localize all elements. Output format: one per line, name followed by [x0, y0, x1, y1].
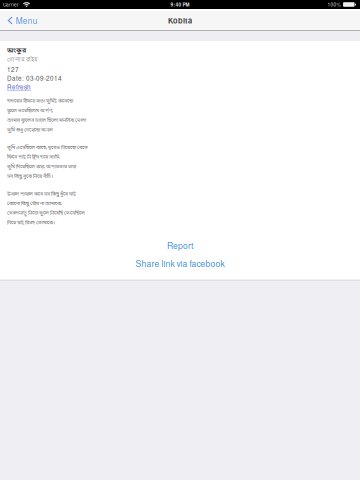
staticText: তুমি শুধু দেখেছো অনল [7, 127, 53, 134]
staticText: উথাল পাথাল করে সব কিছু ধুঁয়ে যাই [7, 191, 76, 198]
staticText: তুমি এসেছিলে কাছে, দূরেও গিয়েছো যেতে [7, 144, 88, 151]
button[interactable]: Report [7, 240, 353, 251]
staticText: সব কিছু বুকে নিয়ে বাঁচি। [7, 173, 53, 180]
staticText: 9:40 PM [170, 1, 189, 8]
staticText: ফিরে পাই নি স্থির হয়ে আমি, [7, 154, 60, 161]
staticText: নিয়ে যাই বিরহ তোমাকে। [7, 219, 55, 226]
staticText: আমার ফুলের ডালে ছিলো মানবিক ভেলা [7, 117, 86, 124]
staticText: Report [167, 239, 193, 251]
staticText: Share link via facebook [135, 257, 224, 269]
button[interactable]: Menu [0, 11, 46, 30]
staticText: Carrier [3, 1, 19, 8]
staticText: Menu [16, 15, 38, 26]
staticText: তুমি দিয়েছিলে কথা, অপারতার রাখা [7, 163, 76, 170]
staticText: অংকুর [7, 46, 26, 55]
staticText: Date: 03-09-2014 [7, 73, 62, 83]
staticText: গোলাম রহিম [7, 56, 38, 64]
staticText: কোনো কিছু থৌর না আমাকে, [7, 200, 62, 207]
button[interactable]: Refresh [7, 82, 31, 91]
button[interactable]: Share link via facebook [7, 258, 353, 269]
staticText: হৃদয়ের সীমানা রাঙা তুমিই করেছো [7, 98, 73, 105]
staticText: 100% [327, 1, 340, 8]
staticText: Kobita [168, 15, 192, 26]
staticText: ভোলানাড়ু নিজে তুলে নিয়েছি ভেসেছিলে [7, 210, 85, 217]
staticText: 127 [7, 65, 19, 74]
staticText: Refresh [7, 82, 31, 91]
staticText: ফুলে ভরেছিলাম অর্পণ, [7, 107, 53, 114]
